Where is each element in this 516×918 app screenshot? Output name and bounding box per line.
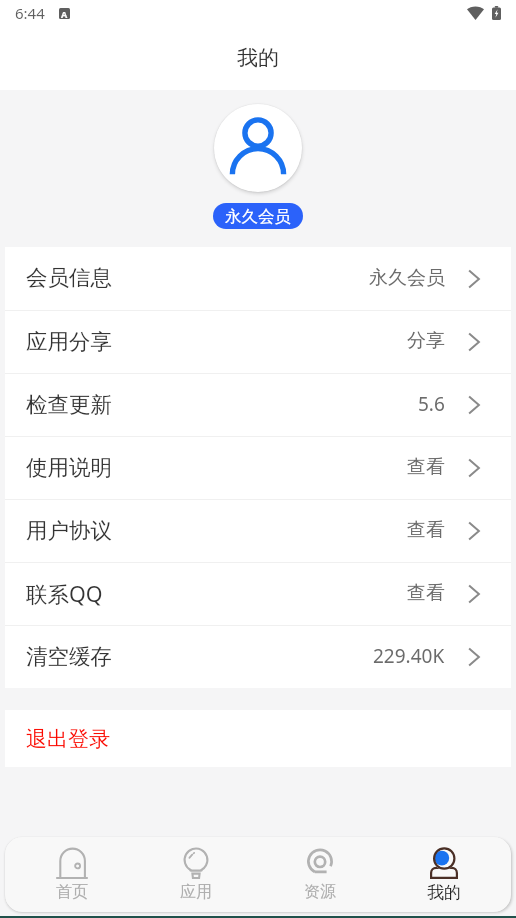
staticText: 联系QQ — [26, 579, 103, 608]
button[interactable]: 应用 — [134, 837, 258, 912]
staticText: 退出登录 — [26, 726, 110, 752]
staticText: 资源 — [304, 882, 336, 902]
button[interactable]: 清空缓存 — [5, 626, 511, 688]
button[interactable]: 退出登录 — [5, 710, 511, 767]
staticText: 用户协议 — [26, 517, 112, 544]
staticText: 分享 — [407, 329, 445, 353]
staticText: 6:44 — [15, 3, 45, 23]
button[interactable]: Avatar — [214, 104, 302, 192]
staticText: 检查更新 — [26, 391, 112, 418]
button[interactable]: 应用分享 — [5, 311, 511, 373]
button[interactable]: 用户协议 — [5, 500, 511, 562]
staticText: 应用 — [180, 882, 212, 902]
button[interactable]: 我的 — [0, 26, 516, 90]
staticText: 应用分享 — [26, 328, 112, 355]
staticText: A — [61, 8, 68, 19]
staticText: 我的 — [237, 45, 279, 71]
button[interactable]: 会员信息 — [5, 247, 511, 310]
button[interactable]: 联系QQ — [5, 563, 511, 625]
staticText: 使用说明 — [26, 454, 112, 481]
button[interactable]: 资源 — [258, 837, 382, 912]
staticText: 5.6 — [418, 391, 445, 417]
staticText: 清空缓存 — [26, 643, 112, 670]
staticText: 229.40K — [373, 643, 445, 669]
staticText: 会员信息 — [26, 264, 112, 291]
button[interactable]: 我的 — [382, 837, 506, 912]
staticText: 查看 — [407, 581, 445, 605]
button[interactable]: 使用说明 — [5, 437, 511, 499]
staticText: 查看 — [407, 455, 445, 479]
staticText: 我的 — [427, 882, 461, 903]
staticText: 永久会员 — [369, 266, 445, 290]
staticText: 永久会员 — [225, 206, 291, 227]
button[interactable]: 检查更新 — [5, 374, 511, 436]
staticText: 首页 — [56, 882, 88, 902]
staticText: 查看 — [407, 518, 445, 542]
button[interactable]: 永久会员 — [213, 203, 303, 229]
button[interactable]: 首页 — [10, 837, 134, 912]
